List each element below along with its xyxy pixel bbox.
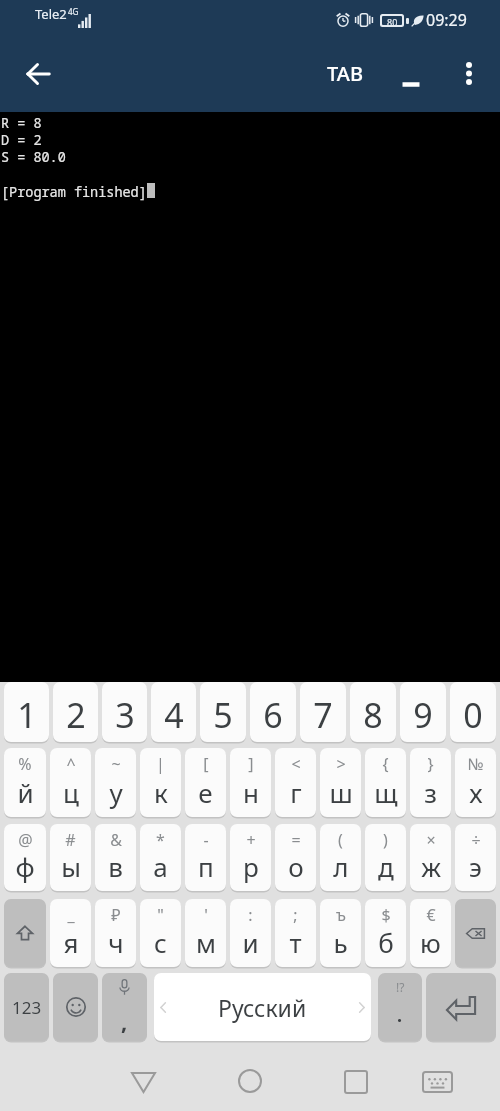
staticText: ) xyxy=(383,829,388,851)
button[interactable]: } xyxy=(410,748,451,817)
staticText: д xyxy=(378,849,394,884)
button[interactable]: # xyxy=(50,824,91,891)
button[interactable]: 4 xyxy=(151,682,196,742)
button[interactable]: ' xyxy=(185,899,226,967)
button[interactable]: 7 xyxy=(300,682,346,742)
staticText: 6 xyxy=(263,692,283,738)
staticText: 0 xyxy=(463,692,483,738)
button[interactable]: ъ xyxy=(320,899,361,967)
staticText: с xyxy=(154,925,167,960)
staticText: 9 xyxy=(413,692,433,738)
button[interactable]: 5 xyxy=(200,682,246,742)
button[interactable]: { xyxy=(365,748,406,817)
staticText: # xyxy=(65,829,76,851)
button[interactable]: 6 xyxy=(250,682,296,742)
staticText: ъ xyxy=(336,904,346,926)
staticText: ( xyxy=(338,829,343,851)
staticText: !? xyxy=(396,979,405,995)
button[interactable]: 8 xyxy=(350,682,396,742)
button[interactable]: 0 xyxy=(450,682,496,742)
staticText: ] xyxy=(248,753,254,775)
staticText: н xyxy=(243,775,259,810)
button[interactable]: $ xyxy=(365,899,406,967)
button[interactable]: | xyxy=(140,748,181,817)
staticText: г xyxy=(290,775,302,810)
staticText: Tele2 xyxy=(35,5,67,23)
button[interactable]: Back xyxy=(14,50,62,98)
button[interactable]: % xyxy=(4,748,46,817)
button[interactable]: = xyxy=(275,824,316,891)
button[interactable]: & xyxy=(95,824,136,891)
staticText: ф xyxy=(15,849,35,884)
button[interactable]: Recents xyxy=(332,1058,380,1106)
staticText: л xyxy=(333,849,349,884)
staticText: п xyxy=(198,849,214,884)
button[interactable]: Back xyxy=(119,1058,167,1106)
button[interactable]: _ xyxy=(50,899,91,967)
staticText: 8 xyxy=(363,692,383,738)
button[interactable]: 9 xyxy=(400,682,446,742)
button[interactable]: ÷ xyxy=(455,824,496,891)
button[interactable]: 2 xyxy=(53,682,98,742)
button[interactable]: " xyxy=(140,899,181,967)
button[interactable]: - xyxy=(185,824,226,891)
button[interactable]: € xyxy=(410,899,451,967)
staticText: { xyxy=(382,753,389,775)
staticText: и xyxy=(242,925,259,960)
staticText: а xyxy=(153,849,168,884)
staticText: € xyxy=(426,904,436,926)
staticText: ; xyxy=(293,904,298,926)
button[interactable]: * xyxy=(140,824,181,891)
button[interactable]: Emoji xyxy=(53,973,98,1041)
staticText: 123 xyxy=(12,996,42,1019)
button[interactable]: Русский xyxy=(154,973,371,1041)
staticText: R = 8 D = 2 S = 80.0 xyxy=(1,114,66,166)
button[interactable]: @ xyxy=(4,824,46,891)
button[interactable]: № xyxy=(455,748,496,817)
staticText: 80 xyxy=(387,16,398,25)
button[interactable]: 123 xyxy=(4,973,49,1041)
staticText: я xyxy=(63,925,79,960)
staticText: 5 xyxy=(213,692,233,738)
button[interactable]: 1 xyxy=(4,682,49,742)
staticText: [Program finished] xyxy=(1,183,147,201)
button[interactable]: Backspace xyxy=(455,899,496,967)
button[interactable]: ^ xyxy=(50,748,91,817)
staticText: р xyxy=(243,849,259,884)
button[interactable]: Home xyxy=(226,1057,274,1105)
button[interactable]: > xyxy=(320,748,361,817)
button[interactable]: × xyxy=(410,824,451,891)
button[interactable]: Enter xyxy=(426,973,496,1041)
staticText: т xyxy=(289,925,302,960)
staticText: = xyxy=(291,829,301,851)
button[interactable]: ~ xyxy=(95,748,136,817)
button[interactable]: < xyxy=(275,748,316,817)
button[interactable]: Punctuation xyxy=(378,973,422,1041)
staticText: + xyxy=(246,829,256,851)
button[interactable]: Voice input xyxy=(102,973,147,1041)
button[interactable]: TAB xyxy=(319,88,371,136)
button[interactable]: Switch keyboard xyxy=(413,1058,461,1106)
staticText: ^ xyxy=(66,753,76,775)
button[interactable]: 3 xyxy=(102,682,147,742)
staticText: м xyxy=(196,925,216,960)
button[interactable]: Minimize xyxy=(386,49,436,99)
staticText: - xyxy=(203,829,209,851)
staticText: _ xyxy=(67,904,75,926)
staticText: з xyxy=(424,775,437,810)
button[interactable]: ( xyxy=(320,824,361,891)
button[interactable]: : xyxy=(230,899,271,967)
button[interactable]: ₽ xyxy=(95,899,136,967)
button[interactable]: [ xyxy=(185,748,226,817)
staticText: ь xyxy=(333,925,348,960)
button[interactable]: + xyxy=(230,824,271,891)
staticText: @ xyxy=(18,829,33,851)
button[interactable]: Shift xyxy=(4,899,46,967)
button[interactable]: More options xyxy=(444,48,494,98)
staticText: Русский xyxy=(218,992,307,1023)
staticText: % xyxy=(18,753,32,775)
staticText: 2 xyxy=(66,692,86,738)
button[interactable]: ; xyxy=(275,899,316,967)
button[interactable]: ) xyxy=(365,824,406,891)
button[interactable]: ] xyxy=(230,748,271,817)
